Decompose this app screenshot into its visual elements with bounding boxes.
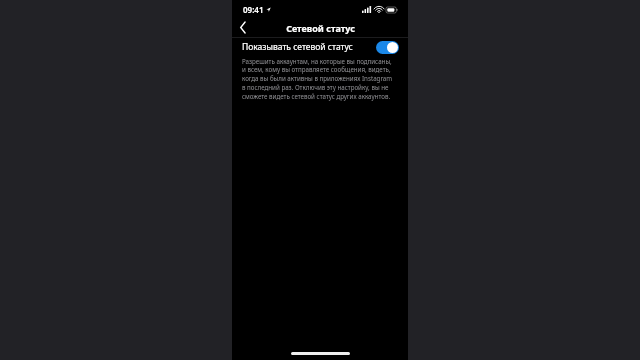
staticText: 09:41 (243, 4, 264, 15)
button[interactable]: Показывать сетевой статус (232, 38, 408, 56)
staticText: Сетевой статус (286, 22, 355, 34)
staticText: Разрешить аккаунтам, на которые вы подпи… (242, 57, 396, 101)
button[interactable]: Показывать сетевой статус, включено (376, 41, 399, 54)
staticText: Показывать сетевой статус (242, 41, 370, 53)
button[interactable]: Back (232, 18, 254, 37)
